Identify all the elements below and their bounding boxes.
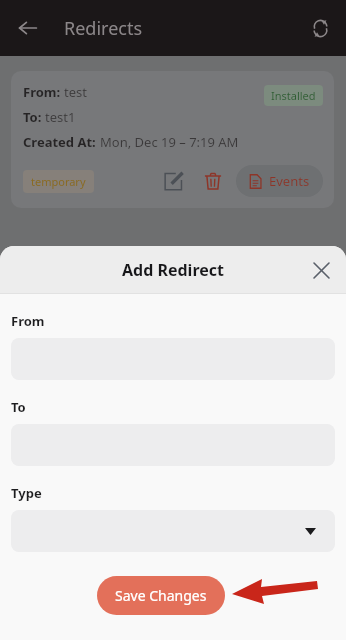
button[interactable]: Edit <box>158 166 188 196</box>
staticText: Events <box>269 172 310 190</box>
staticText: Installed <box>271 88 316 103</box>
staticText: test <box>64 83 87 101</box>
button[interactable]: From: <box>11 71 334 208</box>
button[interactable]: Close <box>304 253 338 287</box>
staticText: Redirects <box>64 16 143 41</box>
staticText: To: <box>23 108 45 126</box>
staticText: From: <box>23 83 64 101</box>
button[interactable]: temporary <box>23 170 94 193</box>
staticText: To <box>11 398 26 416</box>
staticText: temporary <box>31 174 86 189</box>
button[interactable]: Refresh <box>300 8 340 48</box>
button[interactable]: Back <box>8 8 48 48</box>
staticText: Type <box>11 484 42 502</box>
button[interactable]: Delete <box>198 166 228 196</box>
staticText: Created At: <box>23 133 100 151</box>
staticText: From <box>11 312 45 330</box>
button[interactable]: Type dropdown <box>11 510 335 552</box>
button[interactable]: Events <box>236 165 323 197</box>
button[interactable]: Save Changes <box>97 576 225 615</box>
staticText: test1 <box>45 108 76 126</box>
staticText: Mon, Dec 19 – 7:19 AM <box>100 133 239 151</box>
staticText: Add Redirect <box>122 259 224 281</box>
staticText: Save Changes <box>115 586 207 605</box>
